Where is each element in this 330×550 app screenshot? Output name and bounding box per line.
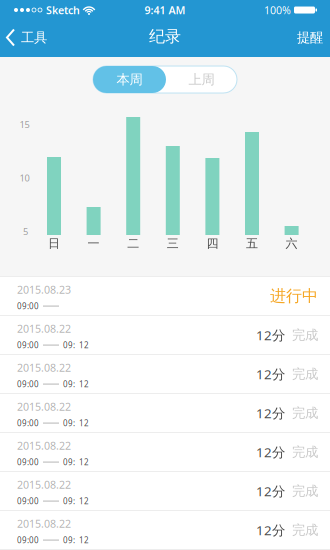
- staticText: 09:00: [17, 535, 39, 545]
- staticText: 进行中: [270, 286, 318, 306]
- staticText: 提醒: [297, 29, 323, 46]
- staticText: 2015.08.23: [17, 283, 71, 297]
- staticText: 2015.08.22: [17, 517, 71, 531]
- staticText: 本周: [116, 71, 142, 88]
- button[interactable]: 2015.08.22: [0, 354, 330, 393]
- staticText: 12分: [256, 521, 285, 539]
- staticText: 12分: [256, 482, 285, 500]
- button[interactable]: 上周: [166, 66, 237, 93]
- staticText: 完成: [292, 366, 318, 382]
- staticText: 9:41 AM: [144, 3, 185, 17]
- button[interactable]: 提醒: [297, 29, 330, 46]
- staticText: 12分: [256, 404, 285, 422]
- button[interactable]: 返回 工具: [0, 28, 47, 46]
- staticText: 09:00: [17, 301, 39, 311]
- staticText: 2015.08.22: [17, 400, 71, 414]
- staticText: 完成: [292, 327, 318, 343]
- button[interactable]: 2015.08.22: [0, 510, 330, 549]
- staticText: 09: 12: [63, 379, 89, 389]
- staticText: 三: [167, 236, 179, 251]
- staticText: 2015.08.22: [17, 439, 71, 453]
- staticText: 100%: [264, 3, 291, 17]
- button[interactable]: 本周: [93, 66, 166, 93]
- staticText: 二: [127, 236, 139, 251]
- staticText: Sketch: [46, 3, 80, 17]
- staticText: 六: [286, 236, 298, 251]
- staticText: 09: 12: [63, 340, 89, 350]
- staticText: 5: [23, 225, 28, 238]
- staticText: 2015.08.22: [17, 478, 71, 492]
- staticText: 12分: [256, 326, 285, 344]
- staticText: 2015.08.22: [17, 322, 71, 336]
- staticText: 完成: [292, 405, 318, 421]
- staticText: 09: 12: [63, 457, 89, 467]
- staticText: 2015.08.22: [17, 361, 71, 375]
- staticText: 一: [88, 236, 100, 251]
- staticText: 四: [206, 236, 218, 251]
- button[interactable]: 2015.08.23: [0, 276, 330, 315]
- staticText: 工具: [21, 29, 47, 46]
- button[interactable]: 2015.08.22: [0, 315, 330, 354]
- staticText: 12分: [256, 443, 285, 461]
- staticText: 纪录: [149, 27, 181, 46]
- staticText: 09:00: [17, 418, 39, 428]
- staticText: 09:00: [17, 340, 39, 350]
- staticText: 完成: [292, 444, 318, 460]
- staticText: 五: [246, 236, 258, 251]
- staticText: 15: [19, 118, 29, 131]
- staticText: 09:00: [17, 379, 39, 389]
- staticText: 09:00: [17, 457, 39, 467]
- button[interactable]: 2015.08.22: [0, 471, 330, 510]
- button[interactable]: 2015.08.22: [0, 432, 330, 471]
- staticText: 09: 12: [63, 418, 89, 428]
- staticText: 09:00: [17, 496, 39, 506]
- button[interactable]: 2015.08.22: [0, 393, 330, 432]
- staticText: 日: [48, 236, 60, 251]
- staticText: 09: 12: [63, 496, 89, 506]
- staticText: 完成: [292, 483, 318, 499]
- staticText: 上周: [188, 71, 214, 88]
- staticText: 完成: [292, 522, 318, 538]
- staticText: 09: 12: [63, 535, 89, 545]
- staticText: 12分: [256, 365, 285, 383]
- staticText: 10: [19, 172, 29, 184]
